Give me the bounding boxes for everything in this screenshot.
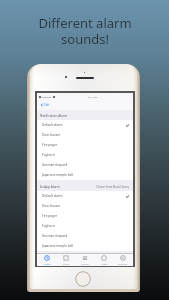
staticText: Foghorn bbox=[42, 224, 55, 228]
button[interactable]: Japanese temple bell bbox=[37, 241, 133, 251]
staticText: Notification Alarm bbox=[40, 114, 68, 118]
button[interactable]: Default alarm bbox=[37, 120, 133, 130]
staticText: Edit bbox=[44, 103, 50, 107]
button[interactable]: German shepard bbox=[37, 160, 133, 170]
staticText: Different alarm sounds! bbox=[38, 14, 132, 47]
button[interactable]: Clock bbox=[57, 253, 75, 266]
staticText: Sounds bbox=[81, 262, 90, 265]
staticText: Japanese temple bell bbox=[42, 173, 74, 177]
staticText: Alarm bbox=[44, 262, 51, 265]
staticText: Settings bbox=[118, 262, 128, 265]
staticText: 6:11 PM bbox=[88, 95, 97, 98]
staticText: Japanese temple bell bbox=[42, 244, 74, 248]
button[interactable]: Settings bbox=[114, 253, 132, 266]
staticText: In-App Alarm bbox=[40, 185, 60, 189]
staticText: Door buzzer bbox=[42, 204, 61, 208]
staticText: Door buzzer bbox=[42, 133, 61, 137]
button[interactable]: Foghorn bbox=[37, 221, 133, 231]
button[interactable]: Door buzzer bbox=[37, 201, 133, 211]
button[interactable]: Door buzzer bbox=[37, 130, 133, 140]
button[interactable]: Sounds bbox=[76, 253, 94, 266]
staticText: Choose From Music Library bbox=[96, 185, 130, 189]
button[interactable]: Foghorn bbox=[37, 150, 133, 160]
staticText: Foghorn bbox=[42, 153, 55, 157]
staticText: Default alarm bbox=[42, 123, 63, 127]
button[interactable]: Edit bbox=[40, 103, 50, 107]
button[interactable]: Fire pager bbox=[37, 140, 133, 150]
button[interactable]: Default alarm bbox=[37, 191, 133, 201]
staticText: Timer bbox=[101, 262, 108, 265]
staticText: Fire pager bbox=[42, 214, 58, 218]
staticText: Default alarm bbox=[42, 194, 63, 198]
button[interactable]: Japanese temple bell bbox=[37, 170, 133, 180]
button[interactable]: Alarm bbox=[38, 253, 56, 266]
staticText: Fire pager bbox=[42, 143, 58, 147]
staticText: Clock bbox=[63, 262, 69, 265]
button[interactable]: German shepard bbox=[37, 231, 133, 241]
staticText: German shepard bbox=[42, 163, 68, 167]
staticText: Settings bbox=[42, 95, 52, 98]
button[interactable]: Timer bbox=[95, 253, 113, 266]
staticText: German shepard bbox=[42, 234, 68, 238]
button[interactable]: Fire pager bbox=[37, 211, 133, 221]
